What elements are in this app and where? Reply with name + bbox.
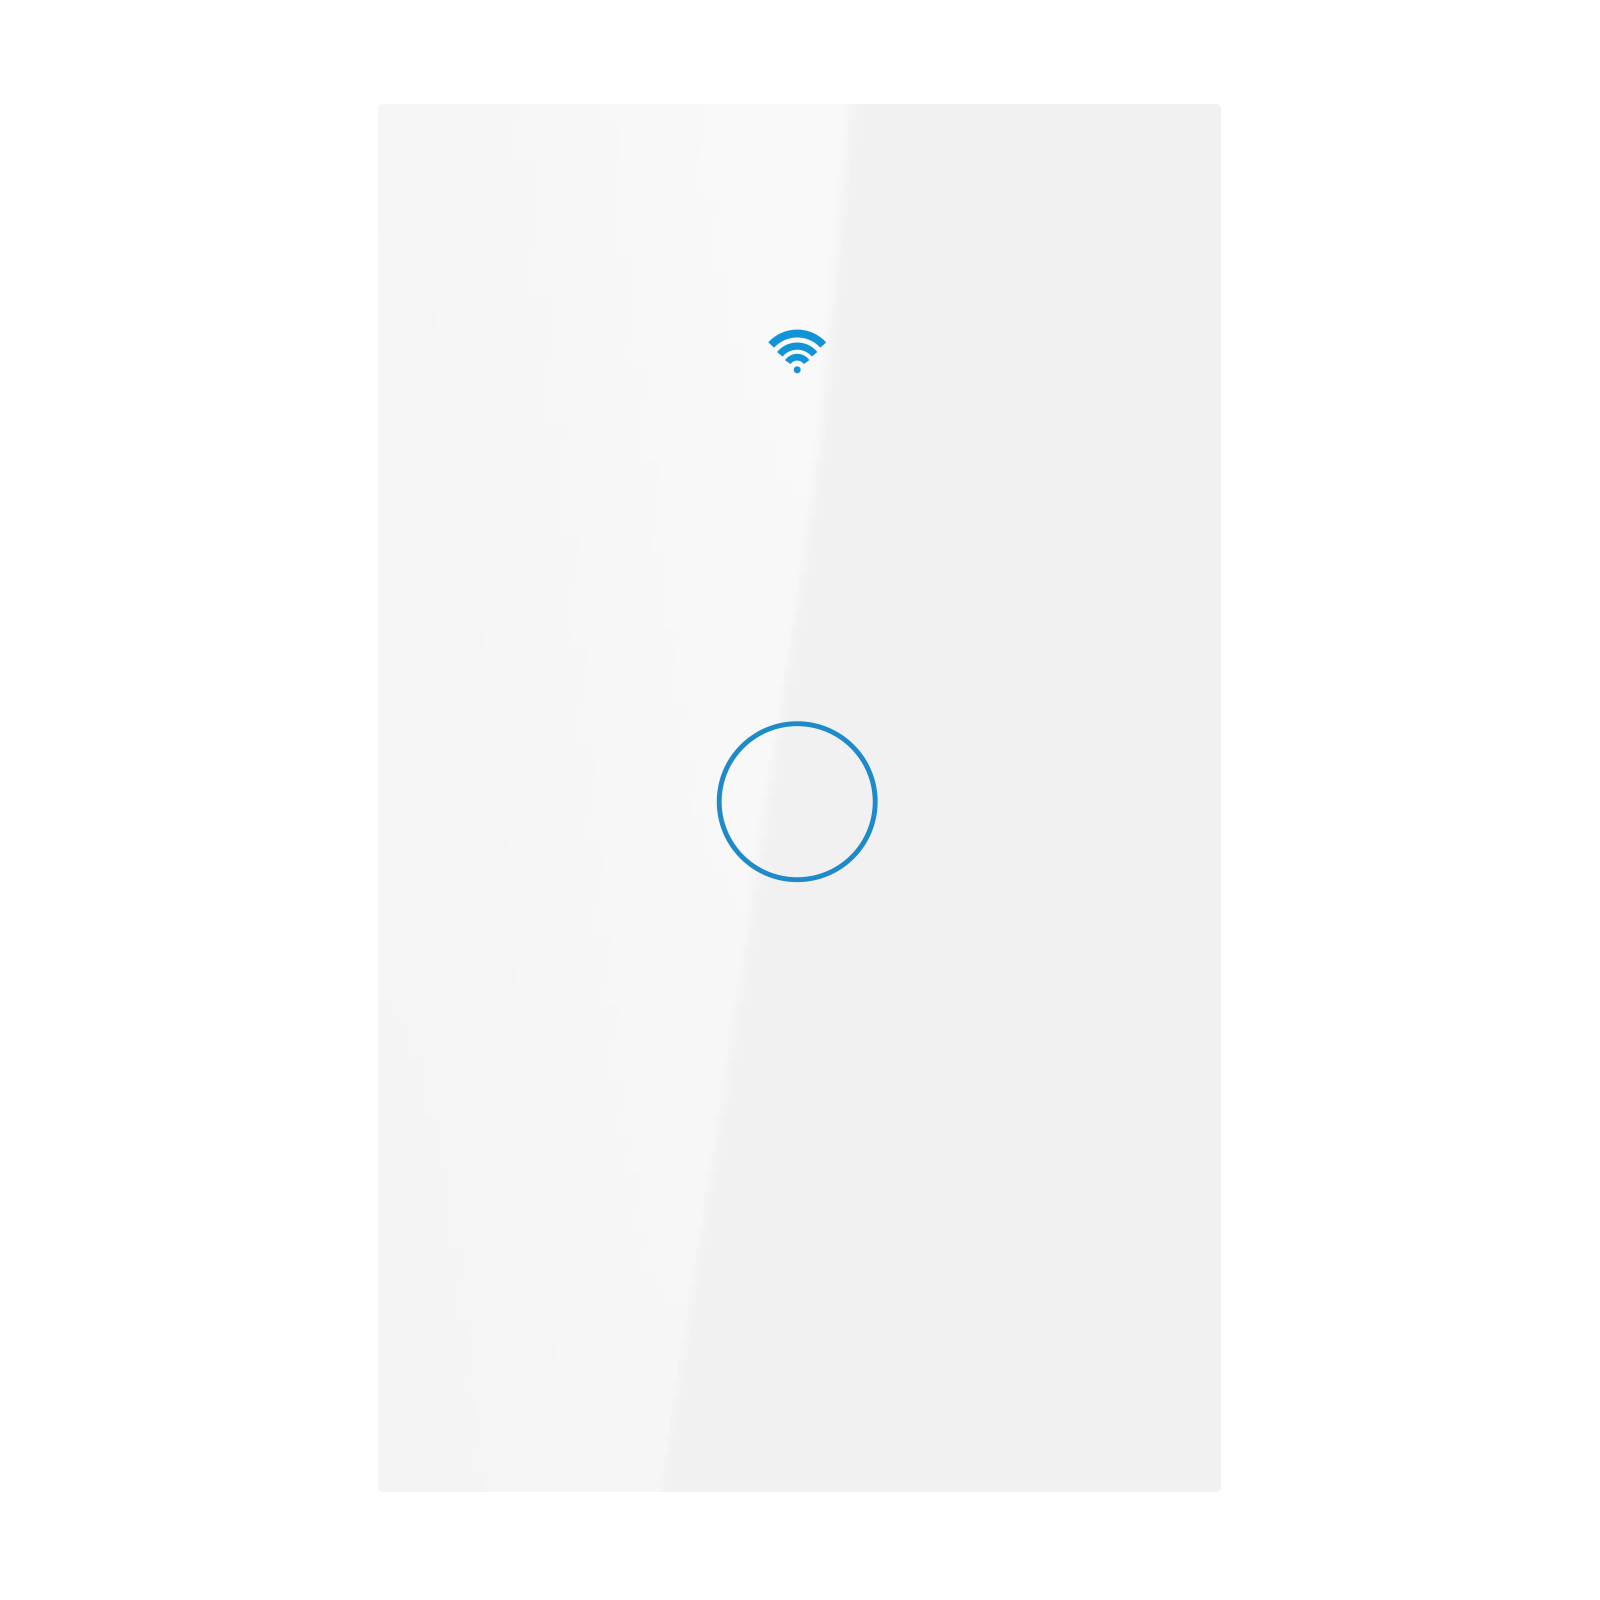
button[interactable]: Toggle light	[692, 697, 902, 907]
button[interactable]: Wi-Fi connected	[741, 294, 853, 406]
